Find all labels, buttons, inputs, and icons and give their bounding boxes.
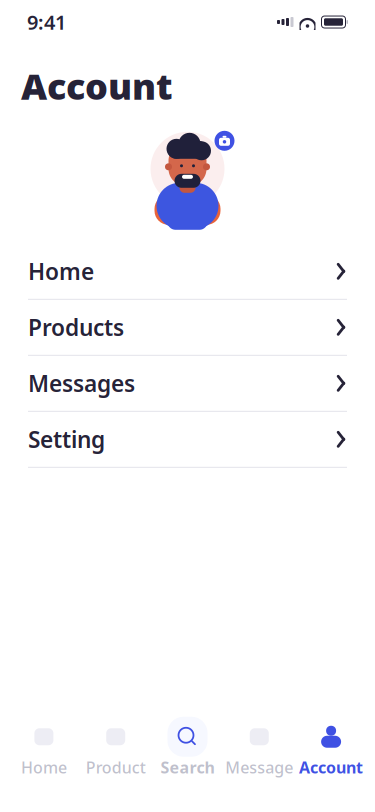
button[interactable]: Setting <box>28 412 347 468</box>
button[interactable]: Message <box>223 718 295 784</box>
button[interactable]: Search <box>152 718 223 784</box>
staticText: Message <box>225 757 293 778</box>
button[interactable]: Home <box>8 718 80 784</box>
staticText: Account <box>299 757 363 778</box>
staticText: Products <box>28 312 124 342</box>
button[interactable]: Messages <box>28 356 347 412</box>
button[interactable]: Account <box>295 718 367 784</box>
staticText: Product <box>86 757 146 778</box>
staticText: Home <box>28 256 94 286</box>
button[interactable]: Products <box>28 300 347 356</box>
staticText: Setting <box>28 424 105 454</box>
staticText: Account <box>21 62 173 110</box>
staticText: Search <box>160 757 214 778</box>
button[interactable]: Home <box>28 244 347 300</box>
staticText: Messages <box>28 368 135 398</box>
button[interactable]: Product <box>80 718 152 784</box>
staticText: Home <box>21 757 67 778</box>
button[interactable]: Change profile photo <box>214 131 234 151</box>
staticText: 9:41 <box>27 9 66 35</box>
